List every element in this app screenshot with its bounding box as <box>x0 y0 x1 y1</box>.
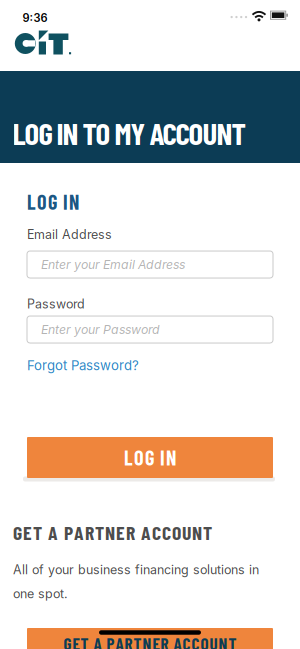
button[interactable]: Forgot Password? <box>27 357 139 373</box>
staticText: Enter your Password <box>41 322 160 337</box>
staticText: L O G I N <box>124 445 176 470</box>
staticText: G E T A P A R T N E R A C C O U N T <box>63 633 236 649</box>
staticText: Forgot Password? <box>27 357 139 373</box>
staticText: Password <box>27 296 85 312</box>
staticText: L O G I N <box>27 190 79 214</box>
staticText: Enter your Email Address <box>41 257 185 272</box>
staticText: G E T A P A R T N E R A C C O U N T <box>13 520 212 544</box>
button[interactable]: G E T A P A R T N E R A C C O U N T <box>27 628 273 649</box>
button[interactable]: Email Address <box>27 251 273 278</box>
button[interactable]: Password <box>27 316 273 343</box>
staticText: LOG IN TO MY ACCOUNT <box>12 114 245 151</box>
staticText: 9:36 <box>22 11 47 25</box>
staticText: Email Address <box>27 227 112 242</box>
staticText: All of your business financing solutions… <box>13 562 259 601</box>
button[interactable]: L O G I N <box>27 437 273 478</box>
